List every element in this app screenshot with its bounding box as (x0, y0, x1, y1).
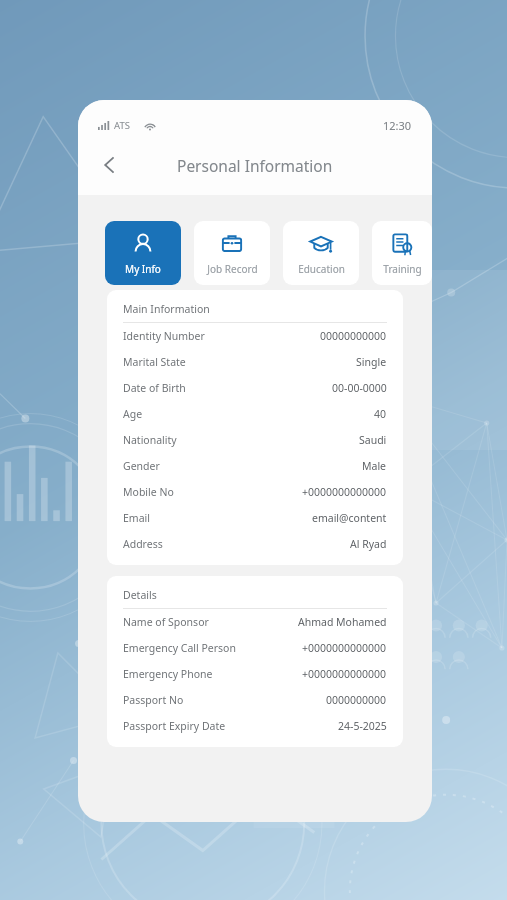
button[interactable]: Details (107, 576, 403, 747)
staticText: My Info (125, 262, 161, 276)
button[interactable]: Training (372, 221, 432, 285)
staticText: Emergency Call Person (123, 641, 236, 655)
staticText: Mobile No (123, 485, 174, 499)
staticText: Saudi (359, 433, 387, 447)
staticText: 00000000000 (320, 329, 387, 343)
staticText: Passport Expiry Date (123, 719, 226, 733)
staticText: Single (356, 355, 387, 369)
staticText: Emergency Phone (123, 667, 213, 681)
staticText: +0000000000000 (302, 485, 387, 499)
staticText: Date of Birth (123, 381, 186, 395)
staticText: Passport No (123, 693, 184, 707)
button[interactable]: Main Information (107, 290, 403, 565)
staticText: Nationality (123, 433, 177, 447)
button[interactable]: Education (283, 221, 359, 285)
staticText: +0000000000000 (302, 641, 387, 655)
staticText: Personal Information (177, 155, 333, 176)
button[interactable]: Job Record (194, 221, 270, 285)
staticText: email@content (312, 511, 387, 525)
staticText: 00-00-0000 (332, 381, 387, 395)
staticText: Gender (123, 459, 160, 473)
staticText: 40 (374, 407, 387, 421)
staticText: Email (123, 511, 150, 525)
staticText: Male (362, 459, 387, 473)
staticText: 0000000000 (326, 693, 387, 707)
staticText: 24-5-2025 (338, 719, 387, 733)
staticText: 12:30 (383, 118, 412, 133)
staticText: Name of Sponsor (123, 615, 209, 629)
staticText: +0000000000000 (302, 667, 387, 681)
staticText: Training (383, 262, 422, 276)
button[interactable]: My Info (105, 221, 181, 285)
staticText: Ahmad Mohamed (298, 615, 387, 629)
staticText: Job Record (207, 262, 258, 276)
staticText: Identity Number (123, 329, 205, 343)
staticText: Marital State (123, 355, 186, 369)
staticText: Main Information (123, 302, 210, 316)
staticText: Al Ryad (350, 537, 387, 551)
staticText: Age (123, 407, 143, 421)
staticText: ATS (114, 119, 130, 132)
button[interactable]: Back (92, 147, 128, 183)
staticText: Details (123, 588, 157, 602)
staticText: Address (123, 537, 163, 551)
staticText: Education (298, 262, 345, 276)
